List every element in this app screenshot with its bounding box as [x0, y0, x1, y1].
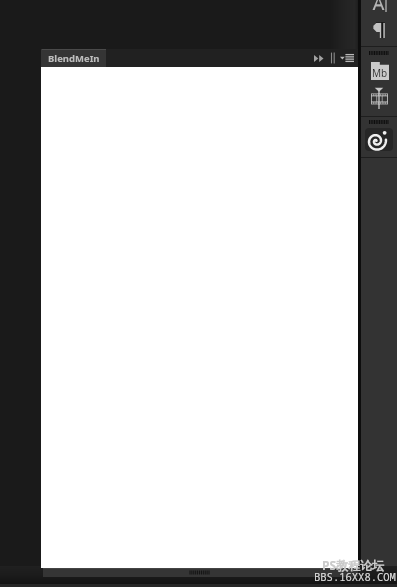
- button[interactable]: BlendMeIn: [41, 49, 106, 67]
- button[interactable]: Paragraph panel: [373, 22, 385, 38]
- staticText: PS教程论坛: [322, 557, 385, 573]
- staticText: BBS.16XX8.COM: [314, 570, 396, 584]
- button[interactable]: Panel menu: [337, 49, 357, 67]
- button[interactable]: Resize panel: [43, 568, 358, 577]
- button[interactable]: BlendMeIn: [365, 128, 393, 151]
- button[interactable]: Collapse panel: [309, 49, 329, 67]
- staticText: BlendMeIn: [48, 52, 100, 65]
- button[interactable]: Character panel: [372, 0, 388, 12]
- staticText: Mb: [372, 66, 388, 80]
- button[interactable]: Mb library: [371, 61, 389, 80]
- button[interactable]: Timeline: [371, 87, 388, 109]
